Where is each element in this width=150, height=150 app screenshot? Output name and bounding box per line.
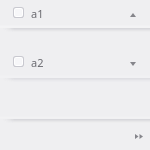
button[interactable]: Next page — [132, 130, 145, 142]
button[interactable]: Expand — [123, 51, 143, 71]
button[interactable]: Collapse — [123, 2, 143, 22]
button[interactable]: Select a2 — [0, 49, 150, 73]
staticText: a2 — [31, 55, 44, 70]
button[interactable]: Select a1 — [0, 0, 150, 24]
staticText: a1 — [31, 6, 44, 21]
